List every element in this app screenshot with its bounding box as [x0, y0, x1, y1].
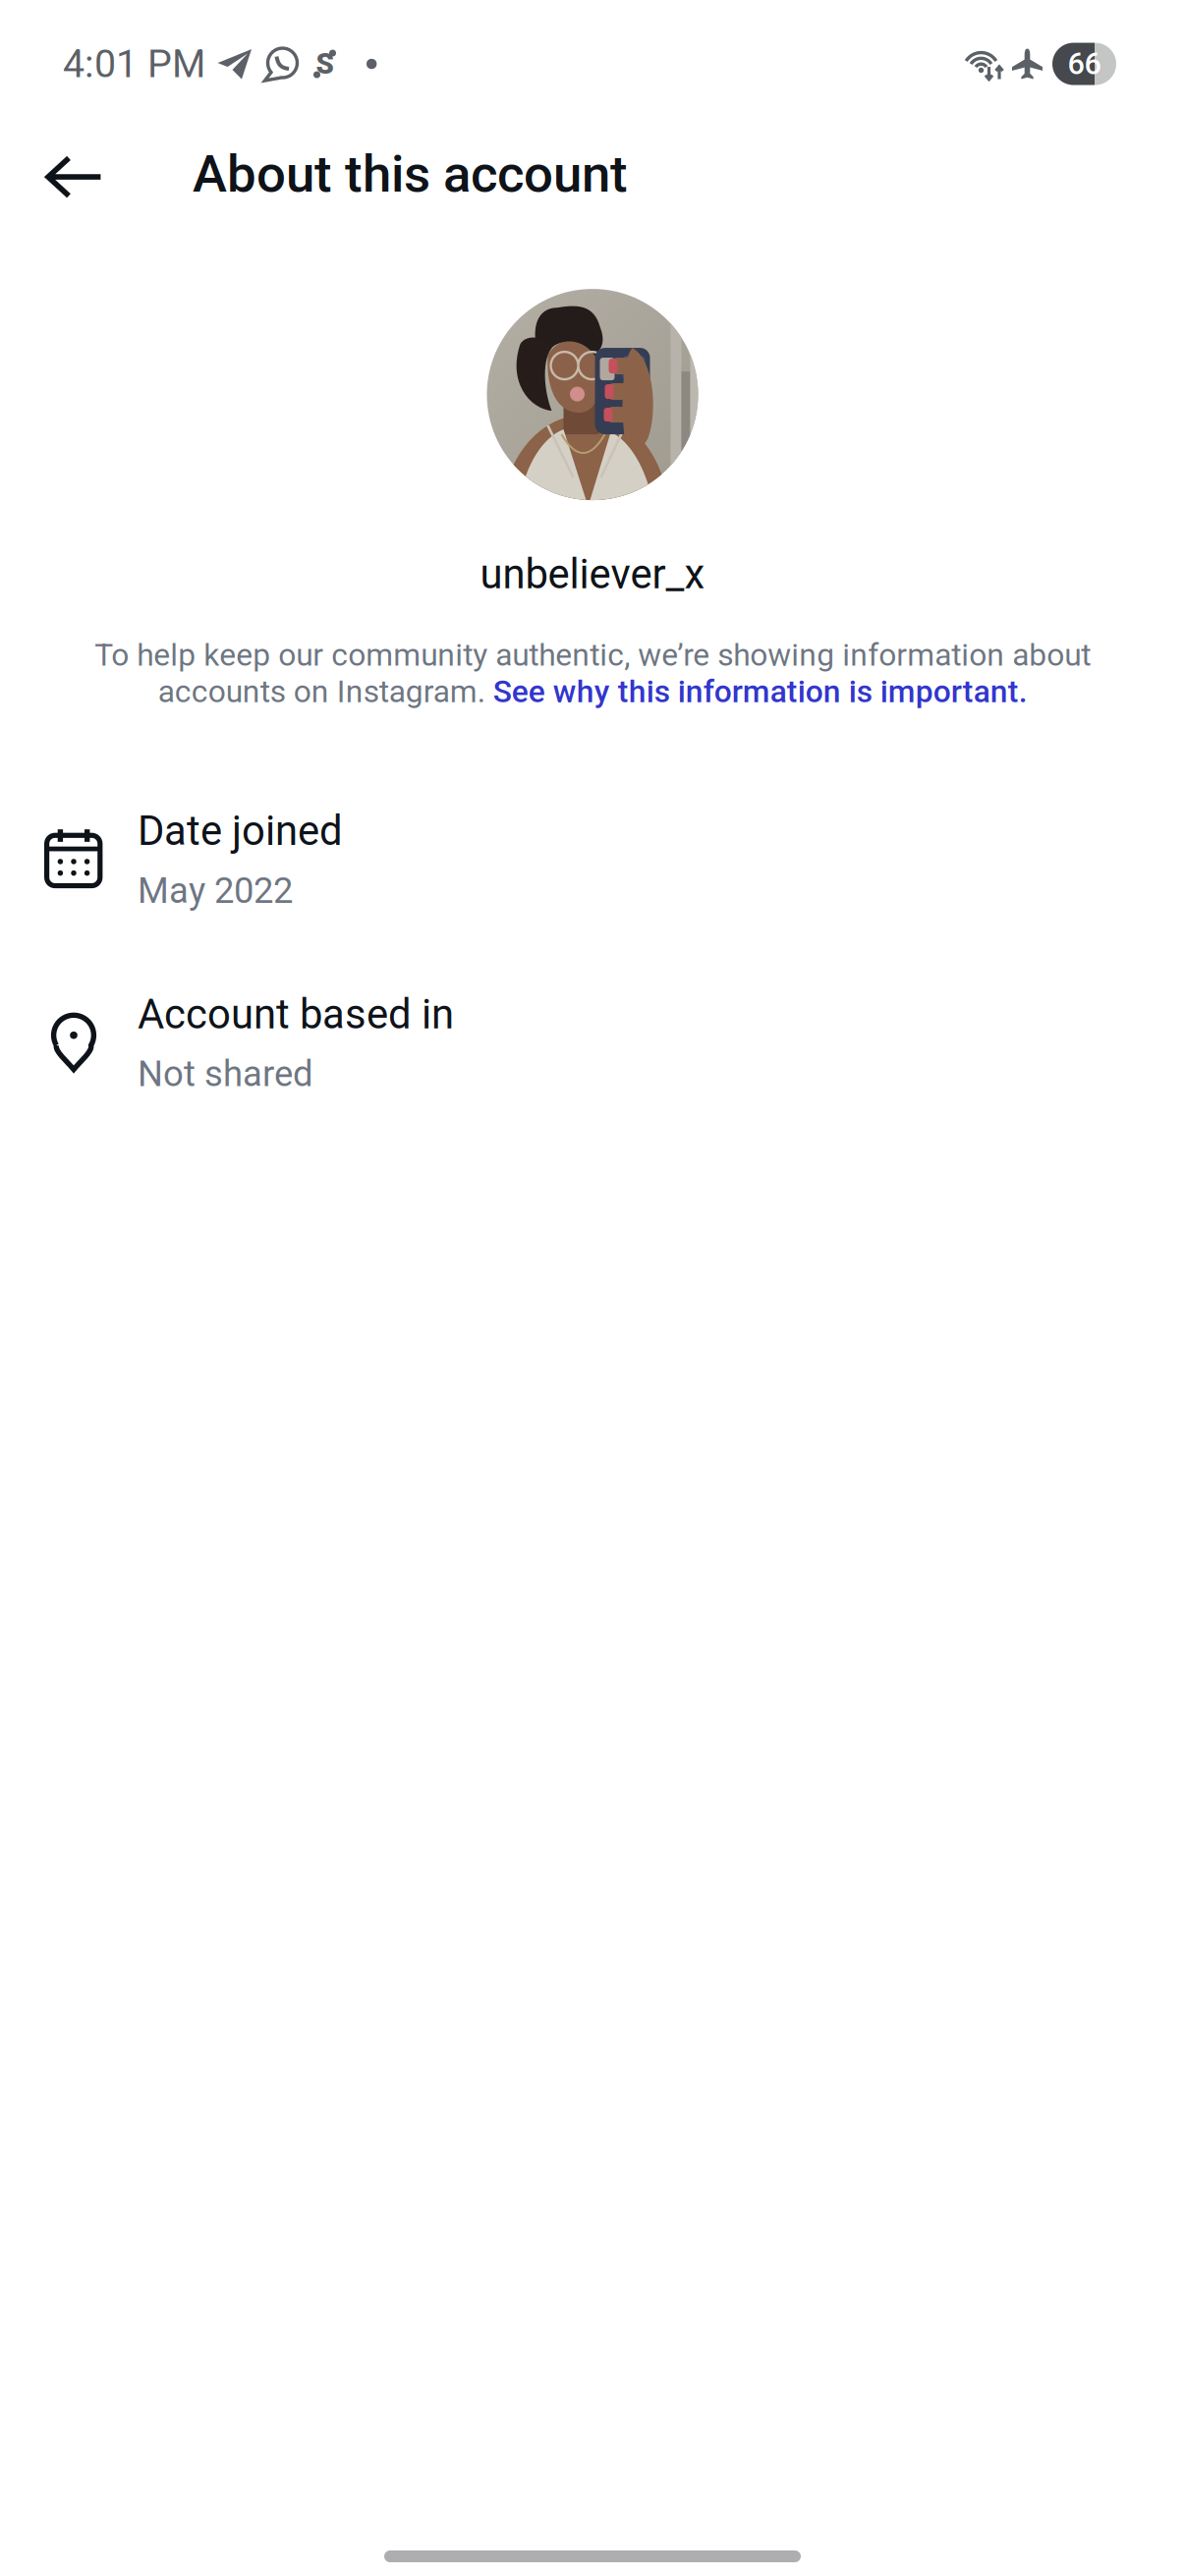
staticText: unbeliever_x: [480, 550, 705, 598]
button[interactable]: Date joined: [0, 807, 1185, 912]
staticText: To help keep our community authentic, we…: [94, 637, 1091, 710]
button[interactable]: Account based in: [0, 990, 1185, 1095]
staticText: Account based in: [138, 990, 454, 1038]
staticText: Not shared: [138, 1053, 313, 1095]
staticText: S: [316, 47, 334, 81]
staticText: Date joined: [138, 807, 343, 855]
staticText: 4:01 PM: [63, 41, 205, 87]
staticText: 66: [1068, 46, 1101, 82]
button[interactable]: Back: [0, 144, 148, 204]
staticText: May 2022: [138, 870, 293, 912]
staticText: About this account: [193, 144, 628, 204]
